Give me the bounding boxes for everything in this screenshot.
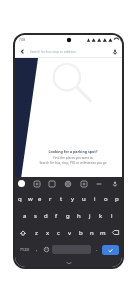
button[interactable]: n bbox=[86, 224, 97, 241]
staticText: l bbox=[111, 212, 113, 220]
staticText: r bbox=[49, 195, 52, 203]
button[interactable]: , bbox=[32, 241, 41, 258]
button[interactable]: f bbox=[51, 207, 62, 224]
button[interactable]: e bbox=[35, 190, 45, 207]
button[interactable]: q bbox=[15, 190, 25, 207]
button[interactable]: p bbox=[111, 190, 122, 207]
staticText: t bbox=[60, 195, 63, 203]
staticText: y bbox=[71, 195, 75, 203]
button[interactable]: Back bbox=[17, 46, 28, 57]
button[interactable]: more bbox=[95, 180, 103, 188]
staticText: u bbox=[82, 195, 86, 203]
button[interactable]: gif bbox=[48, 180, 56, 188]
staticText: c bbox=[57, 229, 60, 237]
button[interactable]: s bbox=[30, 207, 40, 224]
button[interactable]: settings bbox=[64, 180, 72, 188]
staticText: g bbox=[66, 212, 70, 220]
staticText: n bbox=[90, 229, 94, 237]
button[interactable]: Shift bbox=[15, 224, 30, 241]
staticText: f bbox=[55, 212, 58, 220]
staticText: e bbox=[38, 195, 42, 203]
staticText: Search for bus stop or address bbox=[30, 50, 109, 54]
button[interactable]: d bbox=[40, 207, 51, 224]
staticText: j bbox=[89, 212, 91, 220]
staticText: p bbox=[115, 195, 119, 203]
staticText: o bbox=[104, 195, 108, 203]
button[interactable]: clipboard bbox=[80, 180, 88, 188]
staticText: ?123 bbox=[20, 247, 30, 253]
button[interactable]: w bbox=[25, 190, 35, 207]
button[interactable]: a bbox=[20, 207, 30, 224]
staticText: z bbox=[35, 229, 38, 237]
staticText: h bbox=[77, 212, 81, 220]
button[interactable]: o bbox=[100, 190, 111, 207]
button[interactable]: r bbox=[45, 190, 56, 207]
button[interactable]: t bbox=[56, 190, 67, 207]
button[interactable]: Backspace bbox=[108, 224, 122, 241]
button[interactable]: ?123 bbox=[17, 241, 32, 258]
button[interactable]: h bbox=[73, 207, 84, 224]
staticText: Find the places you want to bbox=[53, 156, 93, 160]
staticText: b bbox=[79, 229, 83, 237]
staticText: a bbox=[23, 212, 27, 220]
staticText: i bbox=[94, 195, 96, 203]
staticText: 7:08 bbox=[19, 38, 25, 42]
staticText: k bbox=[99, 212, 103, 220]
button[interactable]: v bbox=[64, 224, 75, 241]
staticText: , bbox=[36, 246, 38, 253]
staticText: v bbox=[68, 229, 72, 237]
button[interactable]: . bbox=[92, 241, 101, 258]
button[interactable]: u bbox=[78, 190, 89, 207]
button[interactable]: k bbox=[95, 207, 106, 224]
staticText: w bbox=[28, 195, 33, 203]
staticText: m bbox=[100, 229, 106, 237]
button[interactable]: sticker bbox=[33, 180, 41, 188]
button[interactable]: Back bbox=[17, 46, 120, 57]
staticText: q bbox=[18, 195, 22, 203]
button[interactable]: Emoji bbox=[41, 241, 51, 258]
button[interactable]: c bbox=[53, 224, 64, 241]
staticText: x bbox=[46, 229, 50, 237]
button[interactable]: j bbox=[84, 207, 95, 224]
button[interactable]: Google search bbox=[18, 180, 25, 187]
staticText: Looking for a parking spot? bbox=[48, 149, 98, 154]
button[interactable]: l bbox=[106, 207, 117, 224]
button[interactable]: Voice search bbox=[109, 46, 120, 57]
button[interactable]: i bbox=[89, 190, 100, 207]
staticText: s bbox=[34, 212, 37, 220]
button[interactable]: g bbox=[62, 207, 73, 224]
button[interactable]: y bbox=[67, 190, 78, 207]
button[interactable]: mic bbox=[111, 180, 119, 188]
button[interactable]: x bbox=[42, 224, 53, 241]
staticText: Search for bus, stop, POI or milestones … bbox=[39, 161, 107, 165]
button[interactable]: b bbox=[75, 224, 86, 241]
staticText: d bbox=[44, 212, 48, 220]
button[interactable]: Enter bbox=[102, 245, 119, 255]
button[interactable]: z bbox=[30, 224, 42, 241]
staticText: . bbox=[96, 246, 98, 253]
button[interactable]: m bbox=[97, 224, 108, 241]
